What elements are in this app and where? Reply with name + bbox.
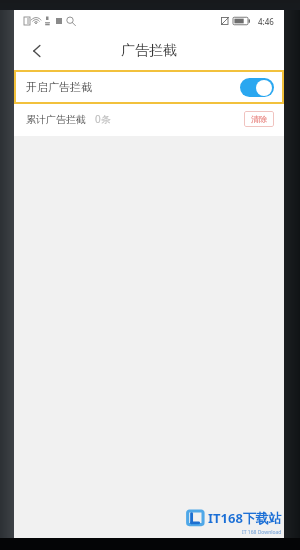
staticText: IT 168 Download [242, 529, 282, 536]
staticText: 累计广告拦截 [26, 113, 86, 126]
staticText: 0条 [95, 112, 111, 126]
button[interactable]: 清除 [244, 111, 274, 127]
button[interactable]: Back [20, 34, 54, 68]
button[interactable]: Toggle ad blocking [240, 78, 274, 97]
staticText: 广告拦截 [121, 42, 177, 60]
staticText: 4:46 [258, 16, 274, 27]
button[interactable]: 开启广告拦截 [14, 70, 284, 104]
staticText: 清除 [251, 114, 267, 124]
staticText: 开启广告拦截 [26, 80, 92, 94]
staticText: IT168下载站 [208, 509, 282, 527]
